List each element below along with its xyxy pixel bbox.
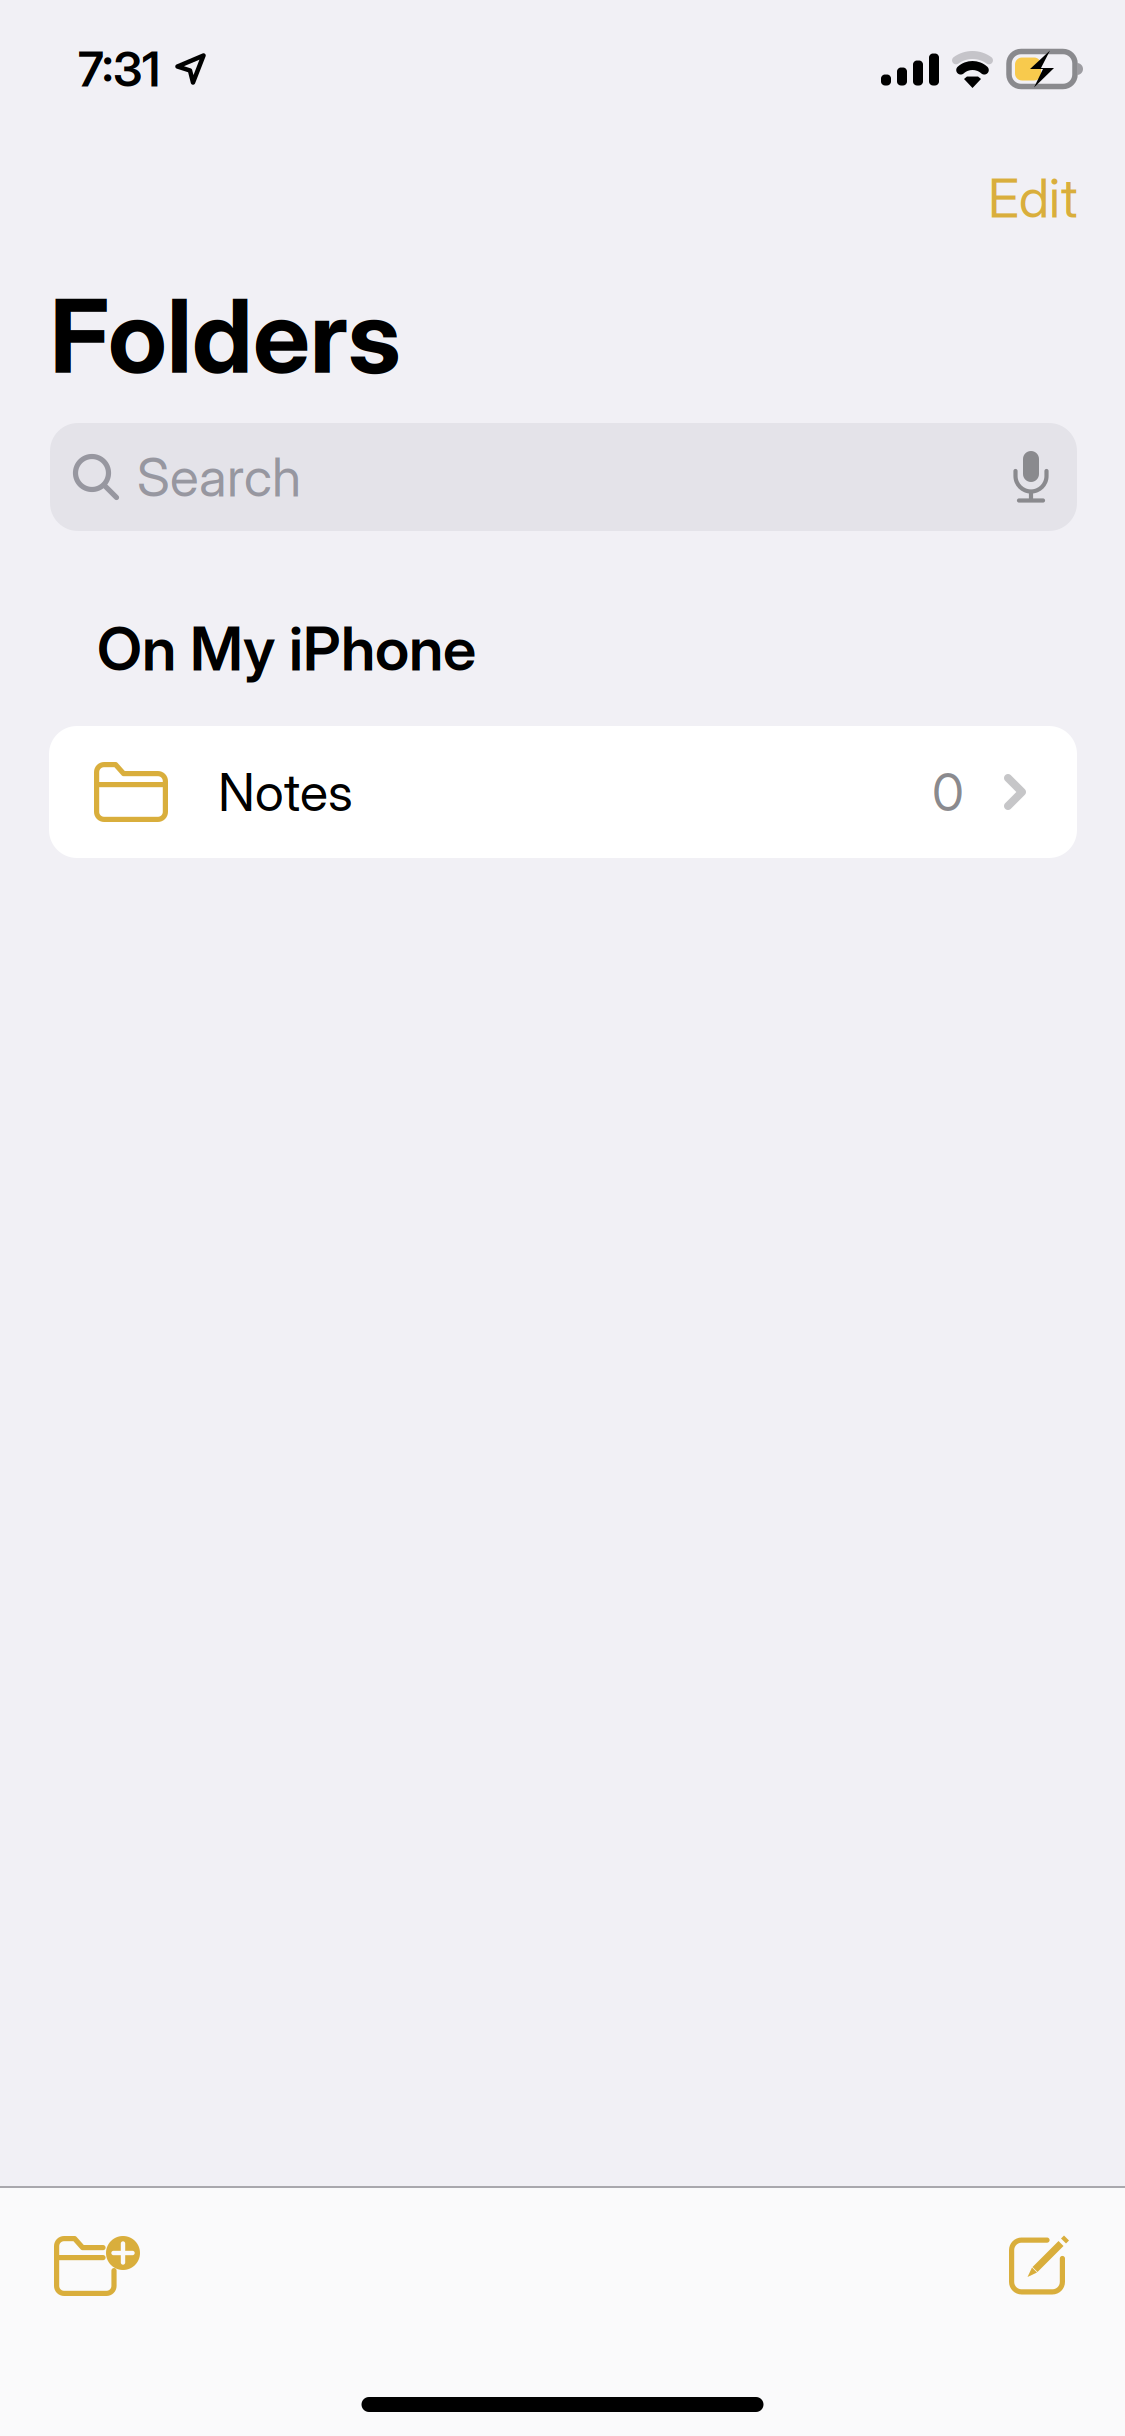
staticText: Folders [50, 275, 401, 397]
staticText: Notes [218, 760, 353, 823]
button[interactable]: New Folder [0, 2188, 170, 2296]
button[interactable]: New Note [979, 2189, 1125, 2294]
staticText: Edit [988, 166, 1078, 230]
staticText: On My iPhone [97, 612, 476, 685]
button[interactable]: Notes [49, 726, 1077, 858]
staticText: Search [137, 445, 301, 509]
button[interactable]: Edit [962, 148, 1104, 248]
button[interactable]: Search [50, 423, 1077, 531]
staticText: 0 [932, 760, 964, 823]
staticText: 7:31 [78, 40, 160, 98]
